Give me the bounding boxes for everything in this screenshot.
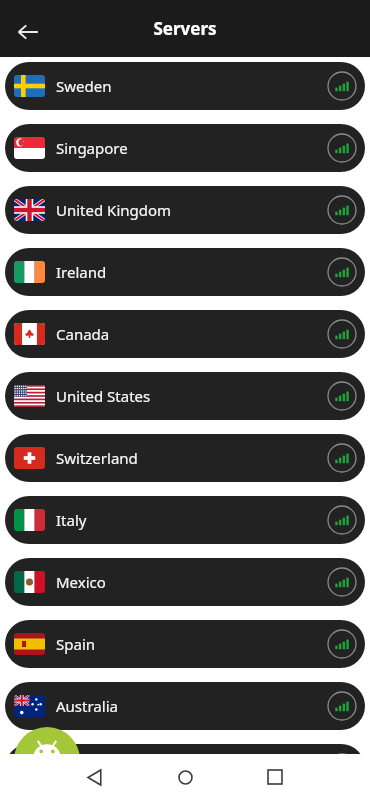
button[interactable]: Recents <box>255 757 295 797</box>
other: Signal strength <box>325 131 359 165</box>
other: Signal strength <box>325 193 359 227</box>
staticText: Ireland <box>56 262 107 282</box>
other: Signal strength <box>325 379 359 413</box>
button[interactable]: Switzerland <box>5 434 365 482</box>
button[interactable]: Canada <box>5 310 365 358</box>
staticText: Switzerland <box>56 448 138 468</box>
staticText: Servers <box>153 17 217 40</box>
other: Signal strength <box>325 689 359 723</box>
staticText: Canada <box>56 324 110 344</box>
button[interactable]: Mexico <box>5 558 365 606</box>
other: Signal strength <box>325 317 359 351</box>
staticText: Australia <box>56 696 118 716</box>
button[interactable]: Singapore <box>5 124 365 172</box>
button[interactable]: Australia <box>5 682 365 730</box>
staticText: Spain <box>56 634 96 654</box>
staticText: Mexico <box>56 572 106 592</box>
other: Signal strength <box>325 69 359 103</box>
other: Signal strength <box>325 751 359 785</box>
staticText: Sweden <box>56 76 112 96</box>
button[interactable]: United Kingdom <box>5 186 365 234</box>
other: Signal strength <box>325 627 359 661</box>
button[interactable]: Sweden <box>5 62 365 110</box>
other: Signal strength <box>325 441 359 475</box>
button[interactable]: Italy <box>5 496 365 544</box>
button[interactable]: Spain <box>5 620 365 668</box>
button[interactable]: United States <box>5 372 365 420</box>
staticText: Singapore <box>56 138 128 158</box>
staticText: United States <box>56 386 151 406</box>
staticText: Italy <box>56 510 87 530</box>
button[interactable]: Home <box>165 757 205 797</box>
button[interactable]: Back <box>75 757 115 797</box>
button[interactable]: Ireland <box>5 248 365 296</box>
other: Signal strength <box>325 565 359 599</box>
staticText: United Kingdom <box>56 200 172 220</box>
other: Signal strength <box>325 503 359 537</box>
button[interactable]: Back <box>8 12 48 52</box>
other: Signal strength <box>325 255 359 289</box>
button[interactable]: Signal strength <box>5 744 365 792</box>
